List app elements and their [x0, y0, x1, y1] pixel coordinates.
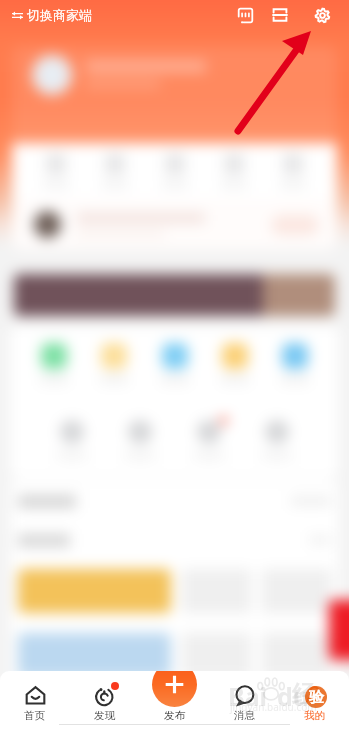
button[interactable]	[18, 569, 171, 613]
button[interactable]	[159, 341, 191, 385]
button[interactable]: 发布	[152, 671, 197, 707]
button[interactable]	[219, 152, 249, 190]
staticText: 我的	[304, 709, 325, 722]
button[interactable]: 我的	[279, 671, 349, 729]
button[interactable]	[271, 215, 319, 235]
staticText: Bai	[228, 679, 268, 713]
button[interactable]: 消息	[209, 671, 279, 729]
staticText: jingyan.baidu.com	[230, 700, 317, 714]
button[interactable]	[12, 46, 337, 143]
button[interactable]: 首页	[0, 671, 69, 729]
staticText: 发布	[164, 709, 185, 722]
staticText: 验	[309, 688, 324, 707]
button[interactable]	[278, 152, 308, 190]
button[interactable]	[18, 494, 331, 508]
button[interactable]	[18, 533, 331, 547]
button[interactable]	[329, 600, 349, 660]
staticText: 切换商家端	[27, 7, 92, 23]
button[interactable]	[41, 152, 71, 190]
staticText: du	[277, 679, 310, 713]
button[interactable]: 发现	[69, 671, 139, 729]
button[interactable]	[18, 633, 171, 677]
button[interactable]: Customer service	[233, 3, 257, 27]
button[interactable]	[122, 417, 158, 462]
button[interactable]	[38, 341, 70, 385]
button[interactable]	[259, 417, 295, 462]
button[interactable]: Settings	[310, 3, 334, 27]
button[interactable]	[14, 274, 335, 316]
button[interactable]	[182, 633, 251, 677]
button[interactable]	[219, 341, 251, 385]
button[interactable]	[54, 417, 90, 462]
button[interactable]	[98, 341, 130, 385]
button[interactable]	[279, 341, 311, 385]
button[interactable]	[262, 633, 331, 677]
button[interactable]: Split screen	[268, 3, 292, 27]
button[interactable]	[262, 569, 331, 613]
button[interactable]	[160, 152, 190, 190]
staticText: 消息	[234, 709, 255, 722]
button[interactable]	[100, 152, 130, 190]
staticText: 发现	[94, 709, 115, 722]
button[interactable]: 切换商家端	[8, 4, 96, 26]
staticText: 首页	[24, 709, 45, 722]
button[interactable]	[12, 199, 337, 250]
button[interactable]	[191, 417, 227, 462]
staticText: 经	[292, 680, 316, 710]
